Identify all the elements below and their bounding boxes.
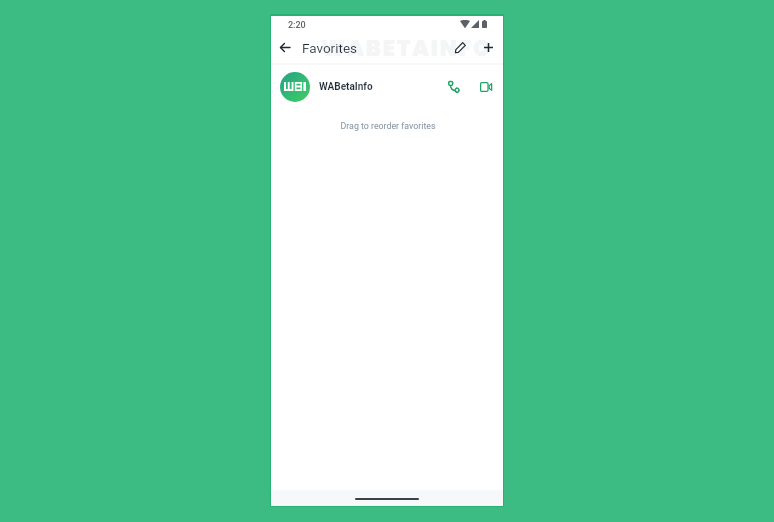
button[interactable]: Add [475,34,501,60]
button[interactable]: Video call [473,74,499,100]
staticText: WABETAINFO [321,33,493,64]
staticText: WABetaInfo [319,81,373,93]
button[interactable]: Back [272,34,298,60]
button[interactable]: Voice call [441,74,467,100]
staticText: Favorites [302,40,358,56]
button[interactable]: WABetaInfo [271,68,503,106]
button[interactable]: Edit [447,34,473,60]
staticText: 2:20 [288,20,306,31]
staticText: Drag to reorder favorites [272,121,504,131]
